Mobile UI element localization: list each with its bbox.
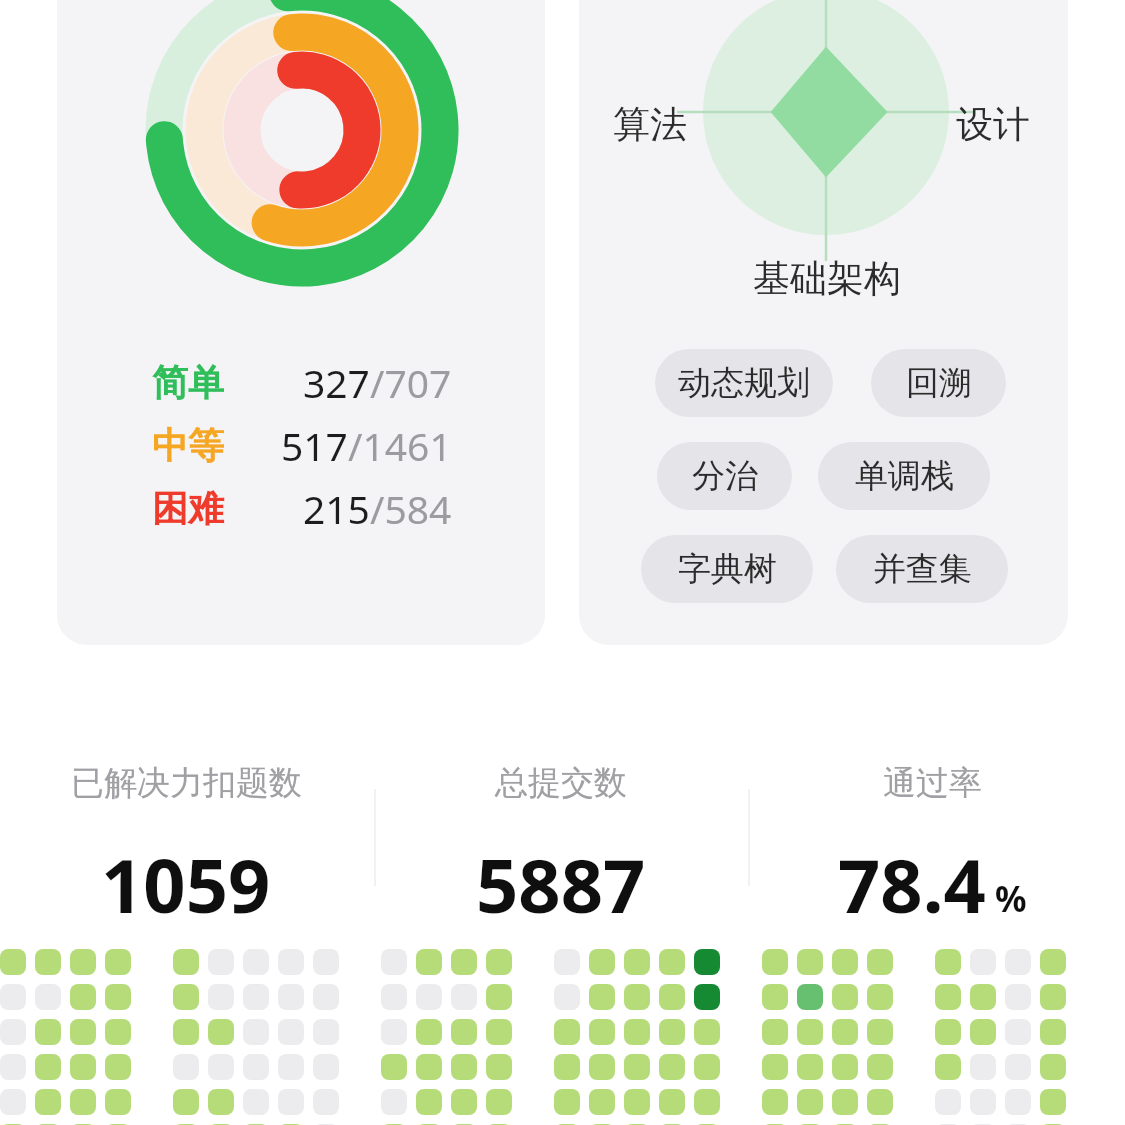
staticText: 通过率	[883, 762, 982, 804]
staticText: 中等	[152, 423, 224, 468]
staticText: 并查集	[873, 548, 972, 590]
staticText: 字典树	[678, 548, 777, 590]
staticText: 困难	[152, 486, 224, 531]
staticText: 总提交数	[495, 762, 627, 804]
staticText: 分治	[692, 455, 758, 497]
button[interactable]: 已解决力扣题数	[6, 762, 366, 935]
staticText: 517	[281, 419, 348, 472]
button[interactable]: 总提交数	[381, 762, 741, 935]
button[interactable]: 动态规划	[655, 349, 833, 417]
staticText: 78.4	[838, 834, 986, 935]
staticText: %	[995, 875, 1027, 923]
button[interactable]	[57, 0, 545, 645]
other: Skill radar chart	[703, 0, 949, 235]
staticText: /1461	[348, 419, 452, 472]
button[interactable]: 单调栈	[818, 442, 990, 510]
button[interactable]: 简单	[152, 354, 452, 410]
button[interactable]: 字典树	[641, 535, 813, 603]
button[interactable]: 并查集	[836, 535, 1008, 603]
staticText: 1059	[101, 834, 271, 935]
button[interactable]: 困难	[152, 480, 452, 536]
staticText: 已解决力扣题数	[71, 762, 302, 804]
button[interactable]	[579, 0, 1068, 645]
staticText: 单调栈	[855, 455, 954, 497]
button[interactable]: 中等	[152, 417, 452, 473]
staticText: 327	[303, 356, 370, 409]
staticText: 215	[303, 482, 370, 535]
staticText: 回溯	[906, 362, 972, 404]
staticText: 设计	[956, 101, 1030, 148]
staticText: 基础架构	[753, 255, 901, 302]
staticText: 简单	[152, 360, 224, 405]
staticText: 5887	[476, 834, 646, 935]
staticText: /584	[370, 482, 452, 535]
button[interactable]: 通过率	[752, 762, 1112, 935]
staticText: /707	[370, 356, 452, 409]
staticText: 算法	[613, 101, 687, 148]
button[interactable]: 分治	[657, 442, 792, 510]
button[interactable]: 回溯	[871, 349, 1006, 417]
staticText: 动态规划	[678, 362, 810, 404]
other: Difficulty progress rings	[146, 0, 458, 286]
